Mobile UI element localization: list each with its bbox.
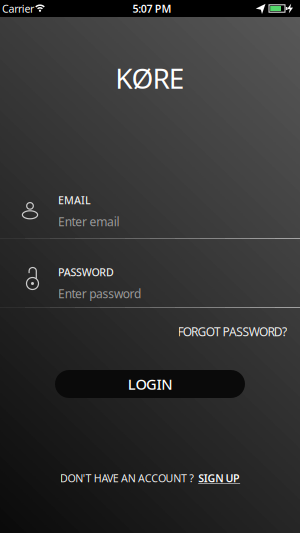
staticText: KØRE <box>115 59 185 97</box>
staticText: Carrier <box>2 1 34 16</box>
staticText: LOGIN <box>128 374 172 394</box>
staticText: Enter email <box>58 213 119 229</box>
button[interactable]: FORGOT PASSWORD? <box>127 323 287 339</box>
staticText: PASSWORD <box>58 265 114 279</box>
staticText: Enter password <box>58 285 141 301</box>
staticText: 5:07 PM <box>132 1 171 16</box>
staticText: SIGN UP <box>198 471 240 485</box>
button[interactable]: EMAIL <box>0 182 300 238</box>
button[interactable]: PASSWORD <box>0 254 300 308</box>
staticText: EMAIL <box>58 193 91 207</box>
staticText: DON'T HAVE AN ACCOUNT ? <box>60 471 194 485</box>
button[interactable]: LOGIN <box>55 370 245 398</box>
staticText: FORGOT PASSWORD? <box>177 323 287 339</box>
button[interactable]: SIGN UP <box>198 471 240 485</box>
